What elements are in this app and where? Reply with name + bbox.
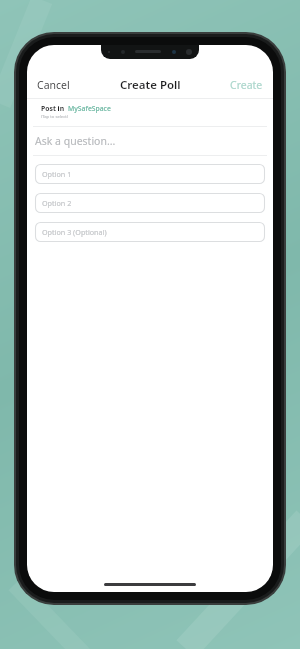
button[interactable]: Create <box>220 74 273 96</box>
button[interactable]: Ask a question... <box>27 127 273 155</box>
button[interactable]: Cancel <box>27 74 80 96</box>
staticText: Option 3 (Optional) <box>42 227 107 237</box>
button[interactable]: Post in <box>27 99 273 123</box>
button[interactable]: Option 1 <box>35 164 265 184</box>
staticText: Create Poll <box>120 77 181 93</box>
staticText: Post in <box>41 104 65 113</box>
staticText: Option 2 <box>42 198 72 208</box>
button[interactable]: Option 2 <box>35 193 265 213</box>
staticText: Ask a question... <box>35 134 116 148</box>
staticText: Create <box>230 78 263 92</box>
staticText: Option 1 <box>42 169 72 179</box>
staticText: MySafeSpace <box>68 104 111 113</box>
staticText: (Tap to select) <box>41 114 68 120</box>
button[interactable]: Option 3 (Optional) <box>35 222 265 242</box>
staticText: Cancel <box>37 78 70 92</box>
